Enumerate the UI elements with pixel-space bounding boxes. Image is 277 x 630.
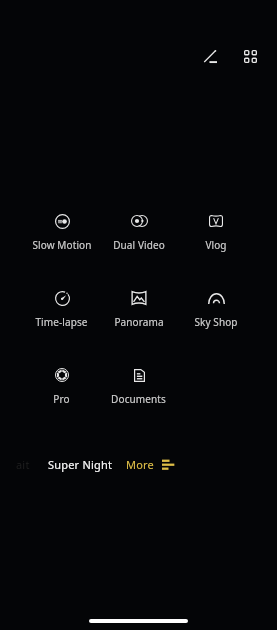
button[interactable]: Documents — [100, 361, 177, 410]
staticText: Pro — [53, 392, 70, 406]
staticText: Panorama — [114, 315, 164, 329]
staticText: Vlog — [205, 238, 227, 252]
button[interactable]: Grid modes — [235, 41, 265, 71]
staticText: Slow Motion — [32, 238, 92, 252]
staticText: Sky Shop — [194, 315, 238, 329]
button[interactable]: ait — [8, 450, 38, 479]
button[interactable]: Panorama — [100, 284, 177, 333]
staticText: Super Night — [48, 457, 113, 472]
button[interactable]: Super Night — [40, 450, 121, 479]
button[interactable]: Vlog — [177, 207, 254, 256]
button[interactable]: Sky Shop — [177, 284, 254, 333]
staticText: Time-lapse — [35, 315, 88, 329]
button[interactable]: Pro — [23, 361, 100, 410]
staticText: More — [126, 457, 154, 472]
button[interactable]: Slow Motion — [23, 207, 100, 256]
staticText: Dual Video — [113, 238, 165, 252]
button[interactable]: Dual Video — [100, 207, 177, 256]
staticText: ait — [16, 457, 30, 472]
button[interactable]: Time-lapse — [23, 284, 100, 333]
button[interactable]: Angle guide — [195, 41, 225, 71]
button[interactable]: More — [118, 450, 183, 479]
staticText: Documents — [111, 392, 166, 406]
